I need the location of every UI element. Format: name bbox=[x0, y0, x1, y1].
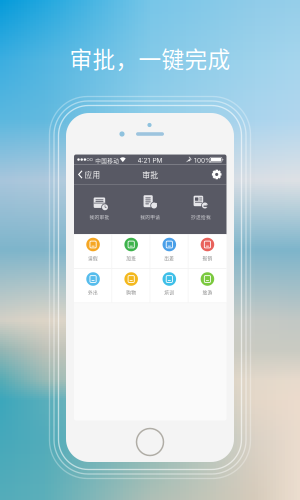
button[interactable]: 设置 bbox=[207, 165, 226, 184]
button[interactable]: 抄送给我 bbox=[176, 184, 226, 234]
button[interactable]: 我的审批 bbox=[74, 184, 125, 234]
button[interactable]: 我的申请 bbox=[125, 184, 176, 234]
staticText: 我的审批 bbox=[89, 213, 109, 220]
button[interactable]: 报销 bbox=[188, 234, 226, 268]
staticText: 4:21 PM bbox=[137, 156, 162, 164]
button[interactable]: 应用 bbox=[74, 165, 106, 184]
button[interactable]: 请假 bbox=[74, 234, 112, 268]
staticText: 我的申请 bbox=[140, 213, 160, 220]
staticText: 培训 bbox=[164, 289, 174, 296]
staticText: 审批 bbox=[142, 169, 158, 180]
staticText: 购物 bbox=[126, 289, 136, 296]
button[interactable]: 旅游 bbox=[188, 269, 226, 303]
staticText: 请假 bbox=[88, 254, 98, 261]
staticText: 外出 bbox=[88, 289, 98, 296]
staticText: 旅游 bbox=[202, 289, 212, 296]
button[interactable]: 出差 bbox=[150, 234, 188, 268]
staticText: 100% bbox=[194, 156, 211, 164]
button[interactable]: 培训 bbox=[150, 269, 188, 303]
button[interactable]: 购物 bbox=[112, 269, 150, 303]
staticText: 抄送给我 bbox=[191, 213, 211, 220]
button[interactable]: 外出 bbox=[74, 269, 112, 303]
staticText: 加班 bbox=[126, 254, 136, 261]
staticText: 中国移动 bbox=[95, 157, 119, 165]
staticText: 应用 bbox=[84, 169, 100, 180]
staticText: 出差 bbox=[164, 254, 174, 261]
button[interactable]: 加班 bbox=[112, 234, 150, 268]
staticText: 报销 bbox=[202, 254, 212, 261]
staticText: 审批，一键完成 bbox=[69, 42, 230, 74]
